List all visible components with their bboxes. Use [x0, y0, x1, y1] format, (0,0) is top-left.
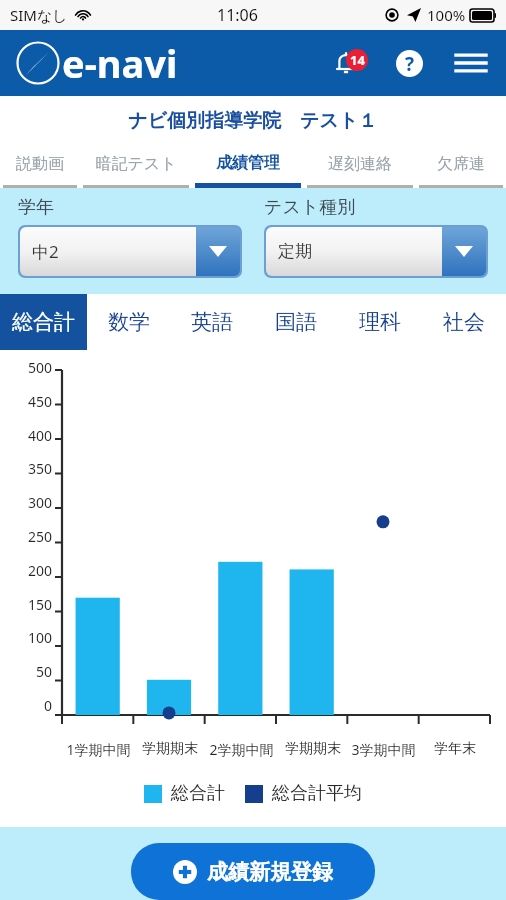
staticText: 50 — [35, 662, 52, 681]
staticText: 理科 — [359, 309, 401, 335]
staticText: 成績管理 — [216, 153, 280, 173]
staticText: 100% — [427, 5, 466, 25]
button[interactable]: 社会 — [422, 294, 506, 350]
staticText: 200 — [27, 561, 52, 580]
staticText: 2学期中間 — [209, 740, 274, 759]
staticText: 1学期中間 — [66, 740, 131, 759]
staticText: 数学 — [108, 309, 150, 335]
button[interactable]: 中2 — [18, 225, 242, 278]
staticText: 250 — [27, 527, 52, 546]
staticText: 総合計 — [12, 309, 75, 335]
staticText: 150 — [27, 595, 52, 614]
staticText: テスト種別 — [264, 196, 356, 219]
staticText: 350 — [27, 459, 52, 478]
staticText: 学期期末 — [285, 740, 341, 758]
button[interactable]: Notifications — [320, 37, 372, 89]
staticText: SIMなし — [10, 5, 68, 25]
staticText: 中2 — [32, 240, 59, 263]
button[interactable]: 遅刻連絡 — [304, 144, 416, 188]
staticText: 国語 — [275, 309, 317, 335]
button[interactable]: 説動画 — [0, 144, 80, 188]
button[interactable]: 暗記テスト — [80, 144, 192, 188]
button[interactable]: 成績管理 — [192, 144, 304, 188]
staticText: 定期 — [278, 241, 312, 262]
staticText: 500 — [27, 358, 52, 377]
staticText: 0 — [43, 696, 52, 715]
staticText: 遅刻連絡 — [328, 154, 392, 174]
staticText: 14 — [350, 51, 365, 69]
staticText: e-navi — [62, 37, 178, 89]
staticText: 欠席連 — [437, 154, 485, 174]
button[interactable]: 数学 — [87, 294, 170, 350]
button[interactable]: 総合計 — [0, 294, 87, 350]
staticText: 450 — [27, 392, 52, 411]
staticText: 100 — [27, 628, 52, 647]
staticText: 3学期中間 — [351, 740, 416, 759]
staticText: 総合計 — [171, 782, 225, 805]
button[interactable]: Help — [386, 40, 432, 86]
staticText: 成績新規登録 — [207, 859, 333, 885]
staticText: 学年末 — [434, 740, 476, 758]
staticText: 学年 — [18, 196, 54, 219]
button[interactable]: 英語 — [170, 294, 254, 350]
staticText: 説動画 — [16, 154, 64, 174]
staticText: ? — [405, 51, 415, 77]
staticText: 学期期末 — [142, 740, 198, 758]
button[interactable]: 理科 — [338, 294, 422, 350]
staticText: 11:06 — [217, 4, 258, 26]
button[interactable]: 定期 — [264, 225, 488, 278]
staticText: 400 — [27, 426, 52, 445]
button[interactable]: 国語 — [254, 294, 338, 350]
staticText: ナビ個別指導学院 テスト１ — [128, 107, 378, 133]
staticText: 総合計平均 — [272, 782, 362, 805]
staticText: 300 — [27, 493, 52, 512]
button[interactable]: 欠席連 — [416, 144, 506, 188]
staticText: 社会 — [443, 309, 485, 335]
staticText: 英語 — [191, 309, 233, 335]
staticText: 暗記テスト — [95, 154, 177, 174]
button[interactable]: Menu — [448, 40, 494, 86]
button[interactable]: 成績新規登録 — [131, 843, 375, 900]
